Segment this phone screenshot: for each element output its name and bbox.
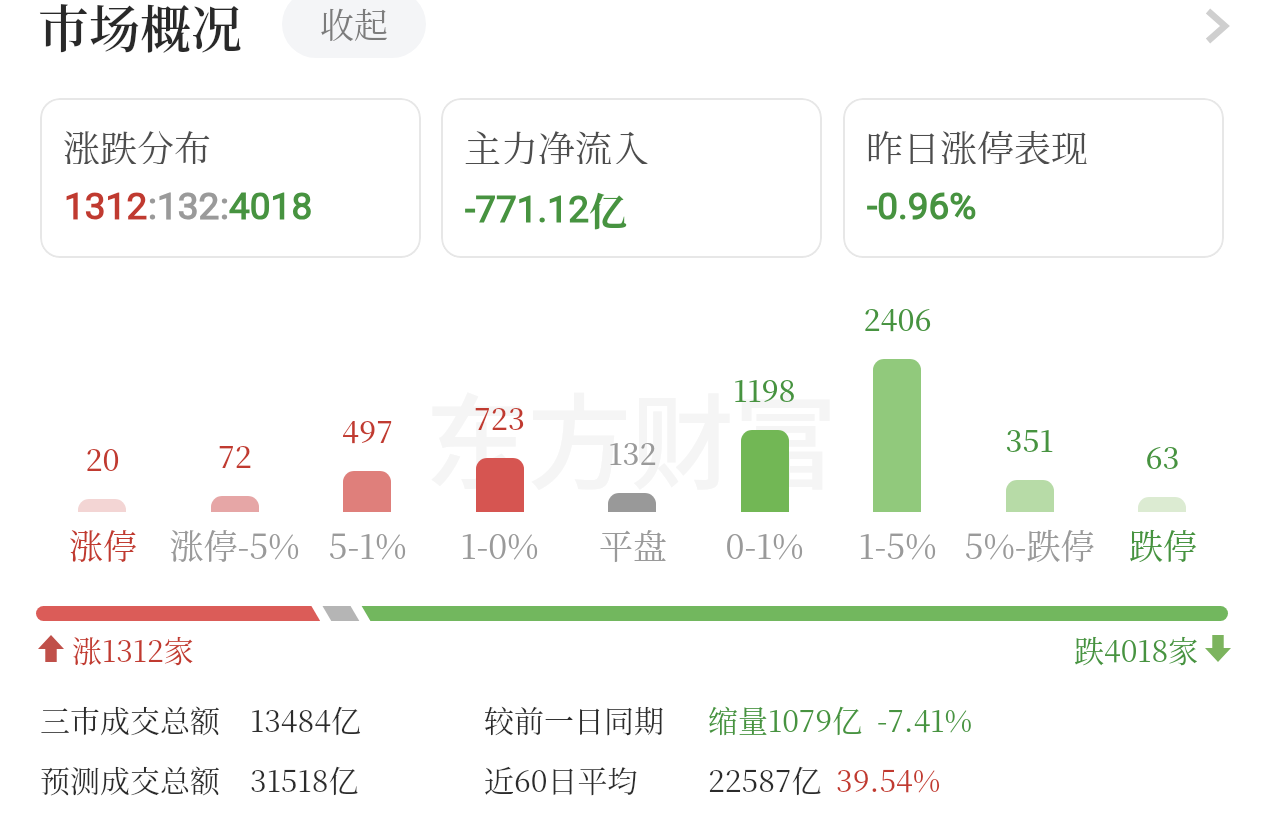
staticText: 涨停-5% [169, 520, 300, 569]
staticText: 涨跌分布 [63, 120, 211, 164]
staticText: 31518亿 [250, 757, 359, 800]
button[interactable]: 近60日平均 [484, 757, 638, 800]
staticText: 1198 [733, 367, 796, 410]
button[interactable]: More [1192, 0, 1252, 52]
button[interactable]: 较前一日同期 [484, 697, 664, 740]
staticText: : [148, 185, 157, 228]
button[interactable]: 主力净流入 [441, 98, 822, 258]
staticText: 723 [474, 395, 525, 438]
staticText: 132 [157, 185, 220, 228]
staticText: 三市成交总额 [40, 697, 220, 740]
other: 下跌 [1205, 635, 1231, 662]
button[interactable]: 三市成交总额 [40, 697, 220, 740]
button[interactable]: 收起 [282, 0, 426, 58]
staticText: 5%-跌停 [964, 520, 1095, 569]
staticText: : [220, 185, 229, 228]
other: 上涨 [38, 635, 64, 662]
staticText: 132 [608, 430, 657, 473]
button[interactable]: 预测成交总额 [40, 757, 220, 800]
staticText: 5-1% [328, 520, 407, 569]
staticText: 跌4018家 [1074, 627, 1199, 670]
staticText: 亿 [589, 181, 628, 231]
staticText: 市场概况 [38, 0, 243, 62]
staticText: 昨日涨停表现 [866, 120, 1088, 164]
staticText: 涨1312家 [72, 627, 194, 670]
staticText: 4018 [229, 185, 313, 228]
staticText: 351 [1005, 417, 1054, 460]
staticText: 0-1% [725, 520, 804, 569]
button[interactable]: 市场概况 [38, 0, 243, 62]
staticText: 72 [218, 433, 252, 476]
staticText: 1-5% [858, 520, 937, 569]
button[interactable]: 昨日涨停表现 [843, 98, 1224, 258]
staticText: 涨停 [69, 520, 137, 569]
staticText: 497 [342, 408, 393, 451]
button[interactable]: 涨跌分布 [40, 98, 421, 258]
staticText: 平盘 [599, 520, 667, 569]
staticText: 1312 [64, 185, 148, 228]
staticText: 跌停 [1129, 520, 1197, 569]
staticText: 39.54% [836, 757, 941, 800]
staticText: 近60日平均 [484, 757, 638, 800]
button[interactable]: 跌4018家 [1074, 627, 1231, 670]
staticText: 较前一日同期 [484, 697, 664, 740]
staticText: 1-0% [460, 520, 539, 569]
button[interactable]: 上涨 [38, 627, 194, 670]
staticText: 收起 [320, 0, 388, 48]
staticText: -771.12 [465, 188, 589, 231]
staticText: 20 [85, 436, 120, 479]
staticText: 22587亿 [708, 757, 822, 800]
staticText: 东方财富 [425, 362, 837, 511]
staticText: 缩量1079亿 [708, 697, 863, 740]
staticText: 2406 [863, 296, 932, 339]
staticText: -7.41% [877, 697, 973, 740]
staticText: 13484亿 [250, 697, 361, 740]
staticText: -0.96% [867, 185, 977, 228]
staticText: 主力净流入 [464, 120, 649, 164]
staticText: 63 [1145, 434, 1180, 477]
staticText: 预测成交总额 [40, 757, 220, 800]
